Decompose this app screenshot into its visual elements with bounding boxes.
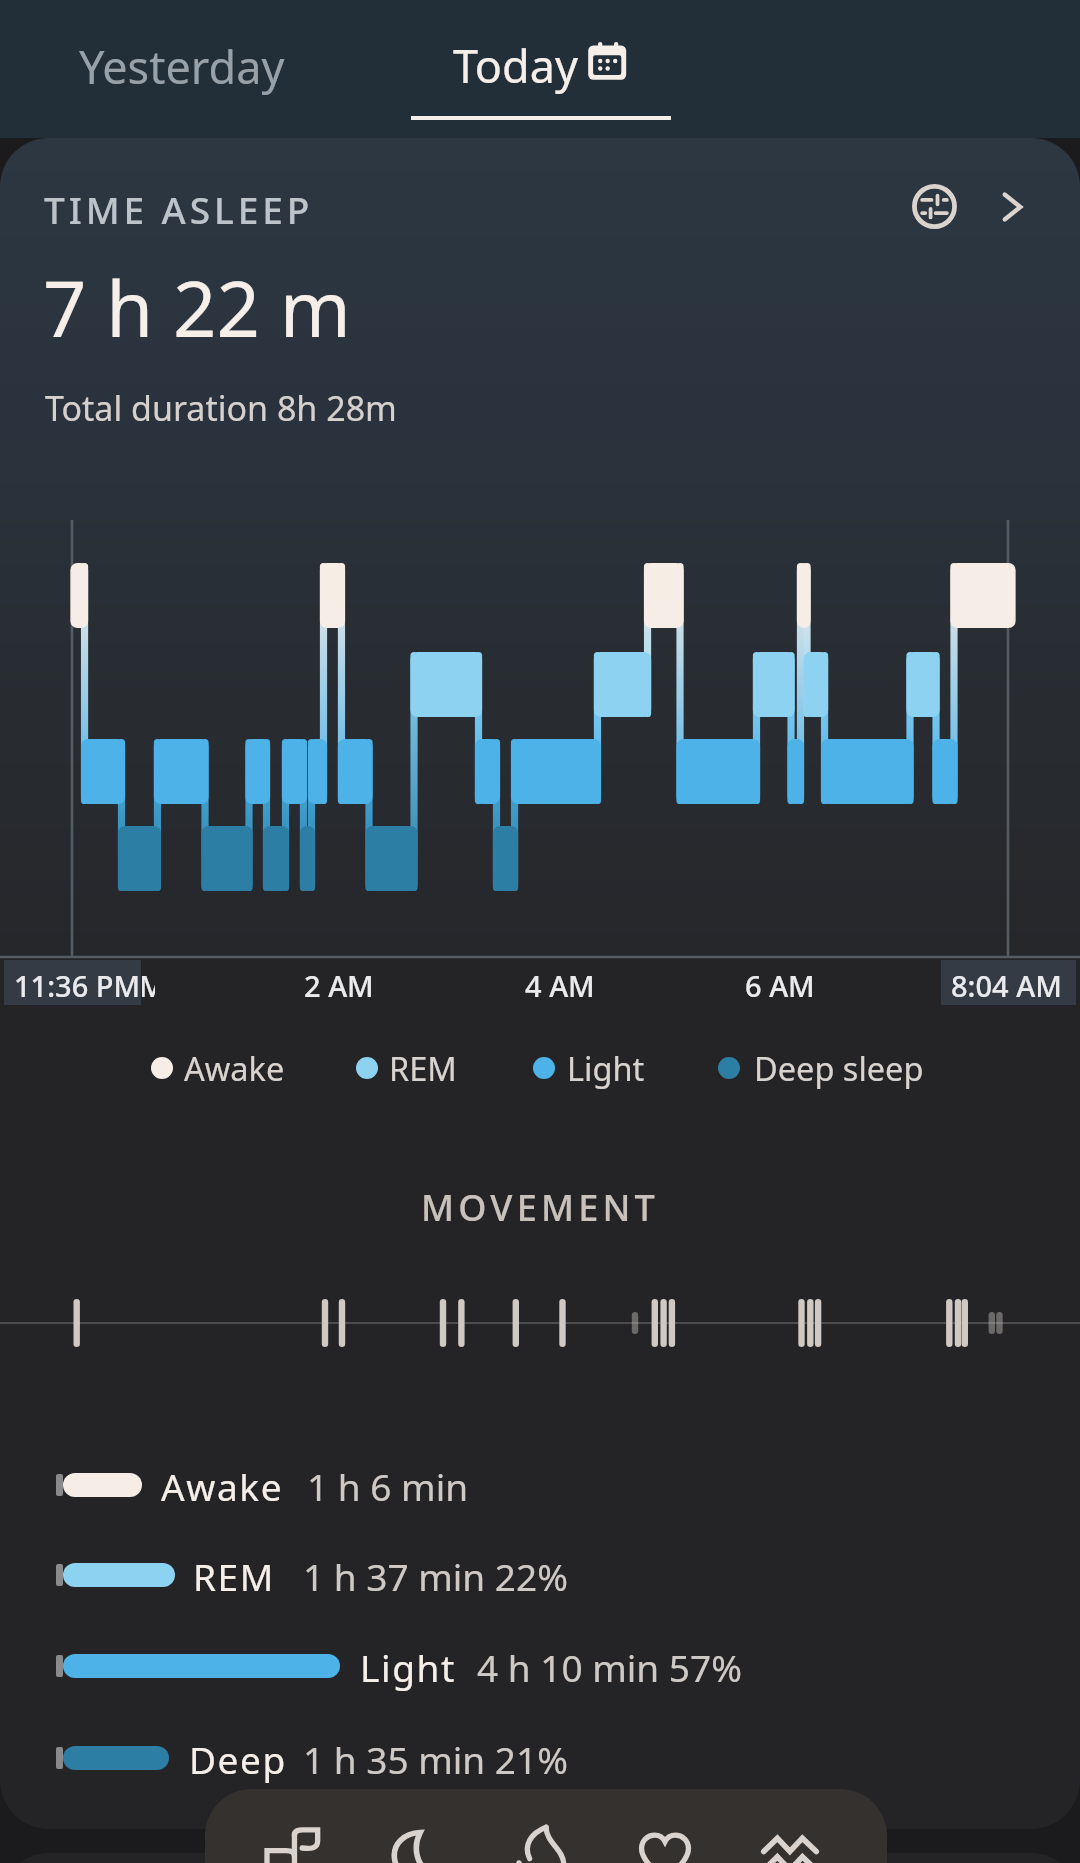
button[interactable]: Trends [760, 1805, 824, 1863]
button[interactable]: Deep sleep [718, 1043, 924, 1093]
staticText: 8:04 AM [951, 966, 1062, 1005]
button[interactable]: Yesterday [0, 0, 380, 138]
staticText: 4 AM [525, 966, 595, 1005]
staticText: Light [360, 1642, 456, 1692]
staticText: 7 h 22 m [43, 256, 351, 360]
button[interactable]: Sleep [385, 1805, 449, 1863]
staticText: Light [567, 1046, 645, 1090]
staticText: Total duration 8h 28m [45, 385, 397, 431]
button[interactable]: REM [0, 1555, 1080, 1627]
staticText: Deep sleep [754, 1046, 924, 1090]
staticText: REM [389, 1046, 457, 1090]
button[interactable]: Awake [151, 1043, 285, 1093]
staticText: Today [453, 35, 578, 96]
button[interactable]: Awake [0, 1465, 1080, 1537]
staticText: TIME ASLEEP [44, 184, 314, 234]
staticText: M [142, 966, 155, 1005]
button[interactable]: Deep [0, 1738, 1080, 1810]
staticText: 4 h 10 min 57% [477, 1642, 742, 1692]
staticText: Deep [189, 1734, 287, 1784]
staticText: Awake [161, 1461, 284, 1511]
staticText: 2 AM [304, 966, 374, 1005]
button[interactable]: REM [356, 1043, 457, 1093]
button[interactable]: Health [633, 1805, 697, 1863]
button[interactable]: Light [0, 1646, 1080, 1718]
button[interactable]: Sleep coach [259, 1805, 323, 1863]
staticText: REM [193, 1551, 275, 1601]
button[interactable]: Light [533, 1043, 645, 1093]
staticText: MOVEMENT [0, 1183, 1080, 1232]
button[interactable]: Sleep settings [911, 183, 957, 229]
button[interactable]: Today [400, 0, 700, 138]
staticText: 1 h 35 min 21% [303, 1734, 568, 1784]
staticText: 1 h 6 min [307, 1461, 469, 1511]
staticText: Yesterday [79, 36, 285, 97]
button[interactable]: Energy [512, 1805, 576, 1863]
staticText: Awake [184, 1046, 285, 1090]
staticText: 6 AM [745, 966, 815, 1005]
staticText: 1 h 37 min 22% [303, 1551, 568, 1601]
staticText: 11:36 PM [14, 966, 141, 1005]
button[interactable]: Open sleep details [987, 184, 1033, 230]
